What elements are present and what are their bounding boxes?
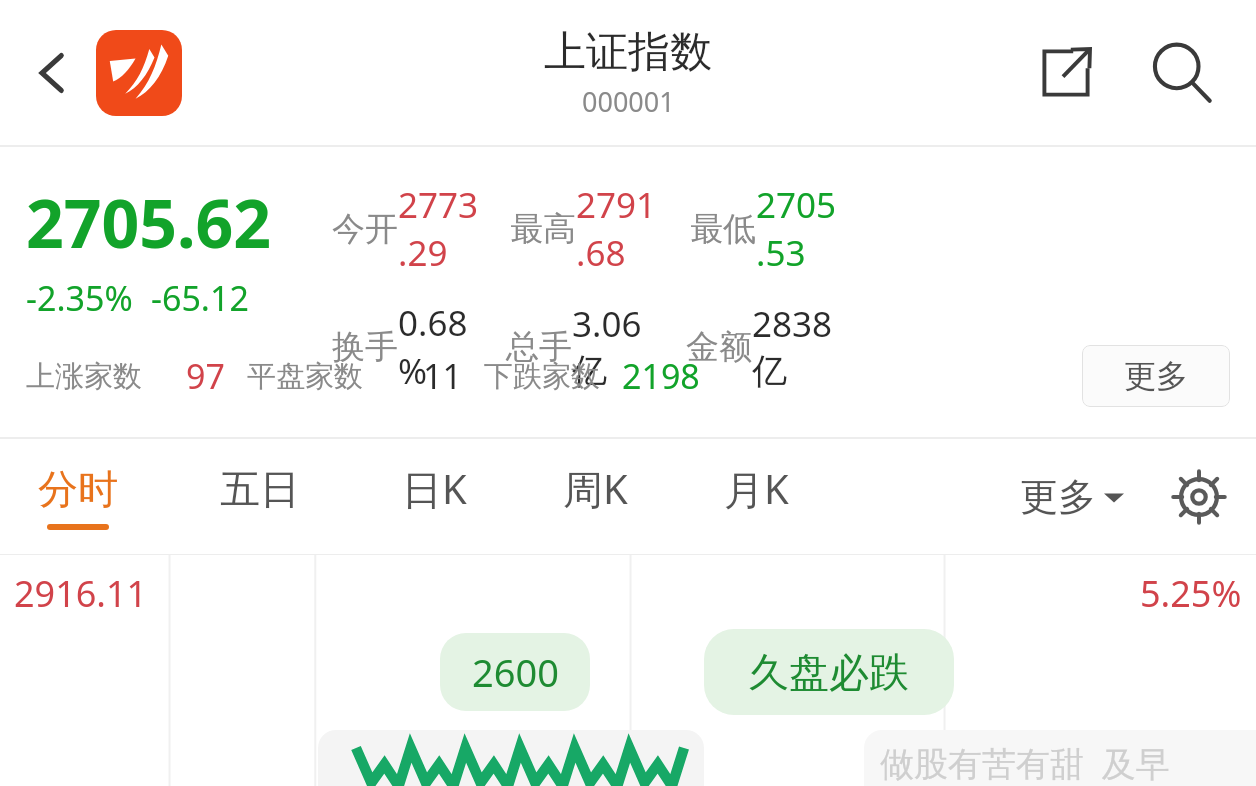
staticText: 上证指数 — [544, 26, 712, 79]
staticText: 最低 — [690, 208, 756, 250]
staticText: 2705.62 — [26, 177, 272, 267]
button[interactable]: 月K — [720, 461, 793, 532]
staticText: 平盘家数 — [247, 358, 363, 395]
staticText: 周K — [563, 461, 628, 516]
staticText: 上涨家数 — [26, 358, 142, 395]
button[interactable]: 2600 — [440, 633, 590, 711]
staticText: -2.35% — [26, 275, 133, 321]
staticText: 金额 — [686, 326, 752, 368]
staticText: 分时 — [38, 464, 118, 514]
staticText: 2916.11 — [14, 569, 148, 618]
staticText: 2705.53 — [756, 181, 842, 277]
button[interactable]: 日K — [398, 461, 471, 532]
staticText: 今开 — [332, 208, 398, 250]
button[interactable]: Share — [1026, 33, 1106, 113]
staticText: 2838亿 — [752, 300, 838, 394]
staticText: 2600 — [472, 646, 559, 698]
button[interactable]: App logo — [96, 30, 182, 116]
staticText: 做股有苦有甜 及早 — [880, 740, 1170, 786]
button[interactable]: 更多 — [1082, 345, 1230, 407]
staticText: 日K — [402, 461, 467, 516]
staticText: 3.06亿 — [572, 300, 670, 394]
staticText: -65.12 — [151, 275, 249, 321]
button[interactable]: 五日 — [216, 464, 304, 530]
button[interactable]: 久盘必跌 — [704, 629, 954, 715]
staticText: 更多 — [1124, 356, 1188, 396]
staticText: 0.68% — [398, 299, 492, 395]
staticText: 久盘必跌 — [749, 647, 909, 697]
button[interactable]: 更多 — [1020, 473, 1124, 521]
staticText: 换手 — [332, 326, 398, 368]
button[interactable]: 周K — [559, 461, 632, 532]
staticText: 97 — [186, 353, 225, 399]
staticText: 月K — [724, 461, 789, 516]
staticText: 五日 — [220, 464, 300, 514]
button[interactable]: 分时 — [34, 464, 122, 530]
staticText: 最高 — [510, 208, 576, 250]
staticText: 5.25% — [1140, 569, 1242, 618]
staticText: 000001 — [582, 83, 675, 120]
staticText: 2198 — [622, 353, 700, 399]
button[interactable]: Search — [1138, 29, 1226, 117]
staticText: 11 — [423, 353, 462, 399]
button[interactable]: Back — [14, 34, 92, 112]
staticText: 下跌家数 — [484, 358, 600, 395]
staticText: 2773.29 — [398, 181, 484, 277]
staticText: 更多 — [1020, 473, 1096, 521]
staticText: 总手 — [506, 326, 572, 368]
button[interactable]: Settings — [1164, 462, 1234, 532]
staticText: 2791.68 — [576, 181, 662, 277]
